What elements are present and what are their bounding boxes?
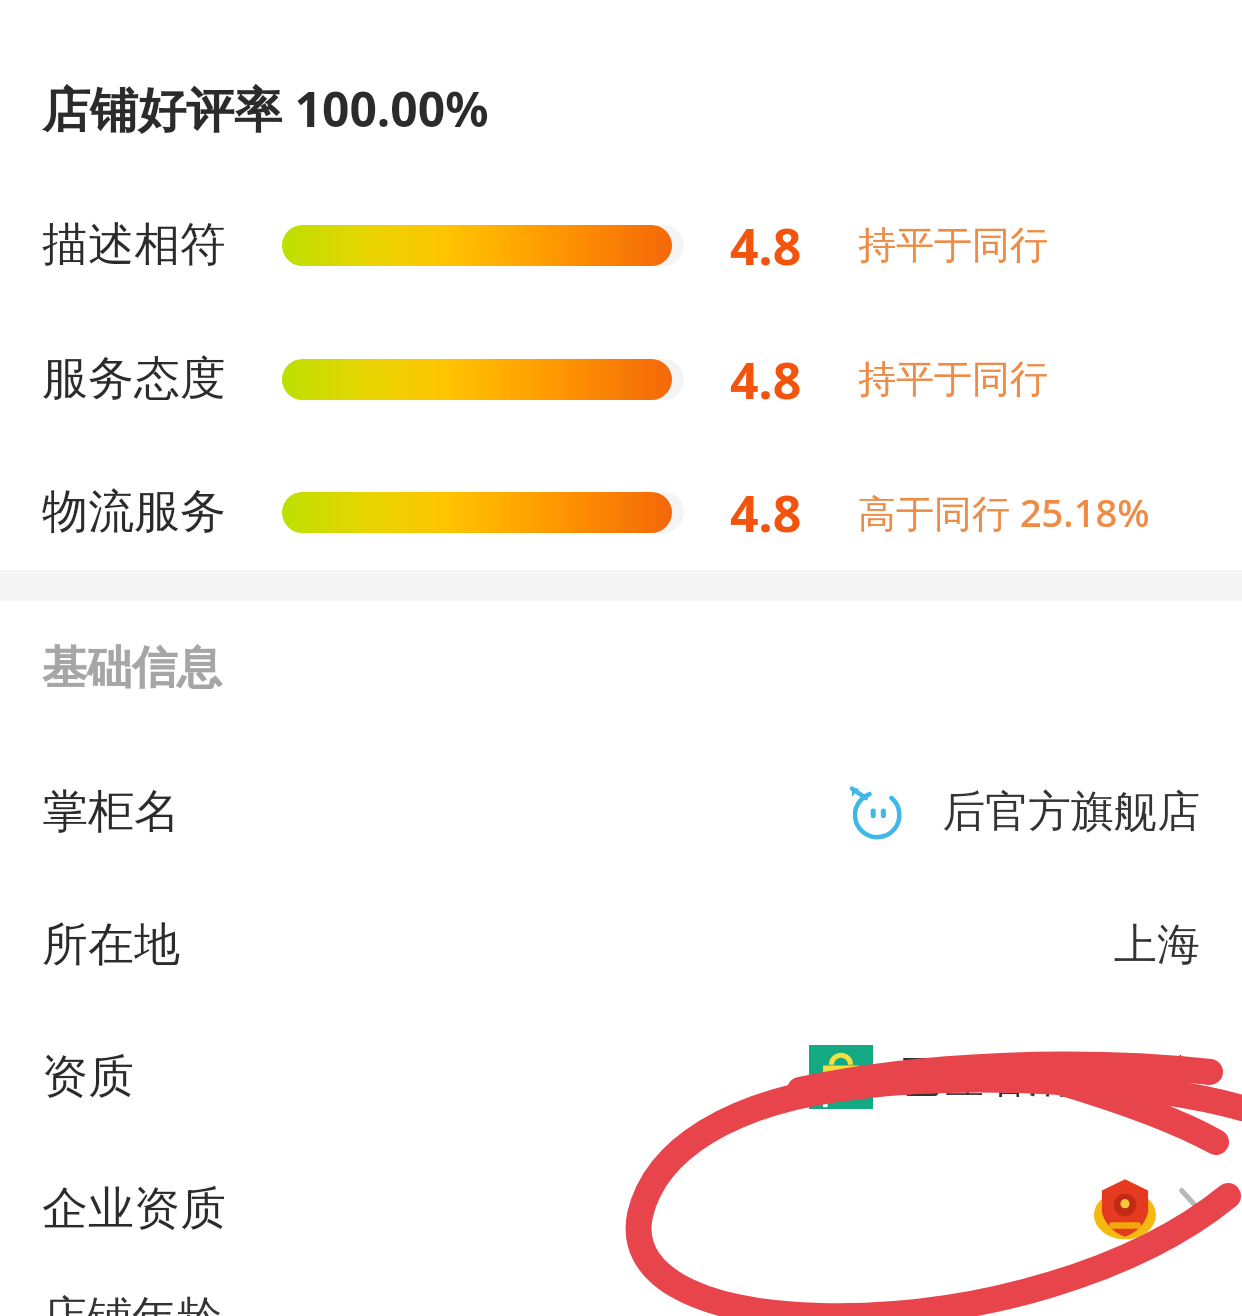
staticText: 4.8: [730, 212, 802, 278]
staticText: 服务态度: [42, 350, 226, 408]
staticText: 已签署消保协议: [899, 1050, 1200, 1104]
staticText: 店铺年龄: [42, 1290, 222, 1316]
button[interactable]: 服务态度: [0, 346, 1242, 412]
button[interactable]: 描述相符: [0, 212, 1242, 278]
button[interactable]: 企业资质: [0, 1172, 1242, 1246]
button[interactable]: 掌柜名: [0, 775, 1242, 849]
staticText: 基础信息: [42, 640, 222, 697]
staticText: 持平于同行: [858, 355, 1048, 403]
staticText: 掌柜名: [42, 783, 180, 841]
staticText: 上海: [1114, 918, 1200, 972]
staticText: 企业资质: [42, 1180, 226, 1238]
other: 消保: [809, 1045, 873, 1109]
staticText: 4.8: [730, 346, 802, 412]
other: 企业资质徽章: [1092, 1176, 1158, 1242]
staticText: 资质: [42, 1048, 134, 1106]
button[interactable]: 资质: [0, 1040, 1242, 1114]
staticText: 描述相符: [42, 216, 226, 274]
other: 旺旺: [846, 782, 906, 842]
button[interactable]: 物流服务: [0, 479, 1242, 545]
staticText: 持平于同行: [858, 221, 1048, 269]
staticText: 后官方旗舰店: [942, 785, 1200, 839]
staticText: 店铺好评率 100.00%: [42, 76, 489, 142]
staticText: 所在地: [42, 916, 180, 974]
button[interactable]: 所在地: [0, 908, 1242, 982]
staticText: 物流服务: [42, 483, 226, 541]
staticText: 4.8: [730, 479, 802, 545]
other: 查看企业资质: [1178, 1187, 1202, 1231]
staticText: 高于同行 25.18%: [858, 486, 1150, 538]
